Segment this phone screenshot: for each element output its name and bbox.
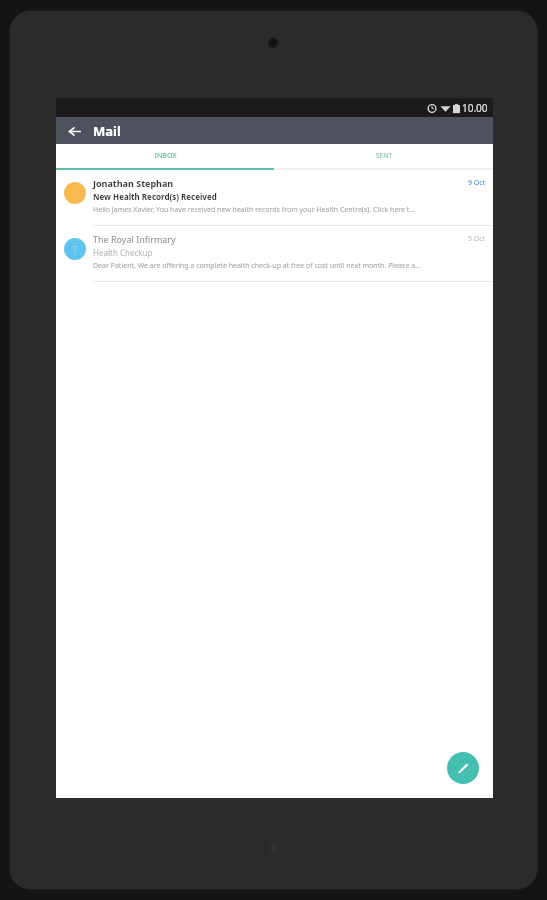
staticText: 5 Oct: [468, 234, 486, 244]
staticText: Jonathan Stephan: [93, 177, 174, 189]
button[interactable]: Back: [63, 120, 85, 142]
staticText: New Health Record(s) Received: [93, 191, 217, 202]
staticText: The Royal Infirmary: [93, 233, 176, 245]
button[interactable]: T: [56, 226, 493, 281]
staticText: Health Checkup: [93, 247, 153, 258]
button[interactable]: SENT: [274, 144, 493, 168]
button[interactable]: Compose: [447, 752, 479, 784]
staticText: Dear Patient, We are offering a complete…: [93, 261, 421, 271]
button[interactable]: Jonathan Stephan: [56, 170, 493, 225]
staticText: SENT: [375, 151, 393, 161]
staticText: 9 Oct: [468, 178, 486, 188]
staticText: INBOX: [154, 151, 177, 161]
button[interactable]: INBOX: [56, 144, 274, 168]
staticText: T: [72, 242, 79, 257]
staticText: 10.00: [462, 101, 488, 115]
staticText: Mail: [93, 122, 121, 140]
staticText: Hello James Xavier, You have received ne…: [93, 205, 415, 215]
